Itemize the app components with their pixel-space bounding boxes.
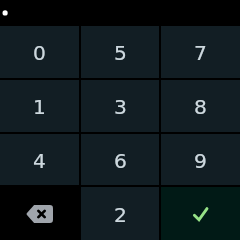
staticText: 4 bbox=[33, 149, 46, 173]
button[interactable]: 1 bbox=[0, 80, 79, 132]
button[interactable]: 3 bbox=[81, 80, 159, 132]
button[interactable]: 2 bbox=[81, 187, 159, 240]
staticText: 3 bbox=[114, 95, 127, 119]
staticText: 8 bbox=[194, 95, 207, 119]
staticText: 6 bbox=[114, 149, 127, 173]
staticText: 1 bbox=[33, 95, 46, 119]
button[interactable]: 7 bbox=[161, 26, 240, 78]
other: Status bbox=[0, 0, 240, 26]
button[interactable]: 6 bbox=[81, 134, 159, 185]
button[interactable]: 9 bbox=[161, 134, 240, 185]
staticText: 0 bbox=[33, 41, 46, 65]
button[interactable]: Backspace bbox=[0, 187, 79, 240]
button[interactable]: 8 bbox=[161, 80, 240, 132]
button[interactable]: 4 bbox=[0, 134, 79, 185]
staticText: 7 bbox=[194, 41, 207, 65]
button[interactable]: Confirm bbox=[161, 187, 240, 240]
button[interactable]: 0 bbox=[0, 26, 79, 78]
staticText: 2 bbox=[114, 203, 127, 227]
staticText: 5 bbox=[114, 41, 127, 65]
staticText: 9 bbox=[194, 149, 207, 173]
button[interactable]: 5 bbox=[81, 26, 159, 78]
